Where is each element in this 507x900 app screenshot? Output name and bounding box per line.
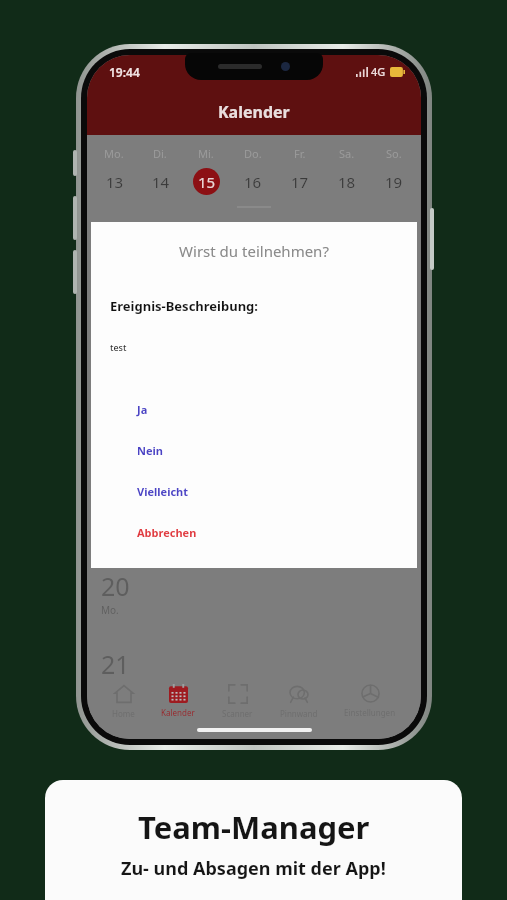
button[interactable]: Abbrechen bbox=[91, 512, 417, 553]
button[interactable]: Einstellungen bbox=[342, 684, 398, 718]
other: Home bbox=[114, 684, 134, 704]
button[interactable]: Vielleicht bbox=[91, 471, 417, 512]
staticText: 17 bbox=[291, 172, 309, 192]
other: Scanner bbox=[228, 684, 248, 704]
other: Einstellungen bbox=[361, 684, 380, 703]
staticText: Kalender bbox=[161, 707, 195, 718]
staticText: Mo. bbox=[101, 603, 119, 617]
staticText: 21 bbox=[101, 647, 130, 677]
other: Kalender bbox=[169, 684, 188, 703]
other: Pinnwand bbox=[289, 684, 309, 704]
staticText: Zu- und Absagen mit der App! bbox=[121, 856, 386, 881]
button[interactable]: Kalender bbox=[159, 684, 197, 718]
staticText: Fr. bbox=[294, 146, 306, 161]
staticText: 16 bbox=[244, 172, 262, 192]
staticText: So. bbox=[386, 146, 402, 161]
button[interactable]: Mo. bbox=[91, 146, 137, 195]
button[interactable]: Di. bbox=[137, 146, 183, 195]
staticText: Pinnwand bbox=[280, 708, 318, 719]
staticText: Abbrechen bbox=[137, 525, 197, 540]
staticText: 19 bbox=[385, 172, 403, 192]
button[interactable]: Ja bbox=[91, 389, 417, 430]
staticText: 20 bbox=[101, 569, 130, 603]
staticText: 19:44 bbox=[109, 64, 140, 80]
staticText: Home bbox=[112, 708, 135, 719]
staticText: 13 bbox=[106, 172, 124, 192]
button[interactable]: Scanner bbox=[220, 684, 255, 719]
staticText: Team-Manager bbox=[138, 806, 370, 848]
staticText: Kalender bbox=[218, 101, 290, 123]
staticText: Nein bbox=[137, 443, 163, 458]
staticText: Einstellungen bbox=[344, 707, 396, 718]
staticText: Wirst du teilnehmen? bbox=[91, 241, 417, 261]
staticText: 4G bbox=[371, 64, 386, 79]
button[interactable]: Fr. bbox=[276, 146, 323, 195]
staticText: Vielleicht bbox=[137, 484, 189, 499]
button[interactable]: Home bbox=[110, 684, 137, 719]
button[interactable]: So. bbox=[370, 146, 417, 195]
staticText: Scanner bbox=[222, 708, 253, 719]
button[interactable]: Do. bbox=[229, 146, 276, 195]
staticText: Sa. bbox=[339, 146, 355, 161]
button[interactable]: Mi. bbox=[183, 146, 229, 195]
staticText: Ereignis-Beschreibung: bbox=[110, 297, 258, 315]
staticText: Ja bbox=[137, 402, 148, 417]
staticText: 14 bbox=[152, 172, 170, 192]
staticText: Do. bbox=[244, 146, 262, 161]
staticText: Mi. bbox=[198, 146, 214, 161]
staticText: Mo. bbox=[104, 146, 124, 161]
staticText: Di. bbox=[153, 146, 167, 161]
staticText: 15 bbox=[198, 172, 216, 192]
button[interactable]: Sa. bbox=[323, 146, 370, 195]
button[interactable]: Nein bbox=[91, 430, 417, 471]
staticText: 18 bbox=[338, 172, 356, 192]
staticText: test bbox=[110, 341, 127, 353]
button[interactable]: Pinnwand bbox=[278, 684, 320, 719]
